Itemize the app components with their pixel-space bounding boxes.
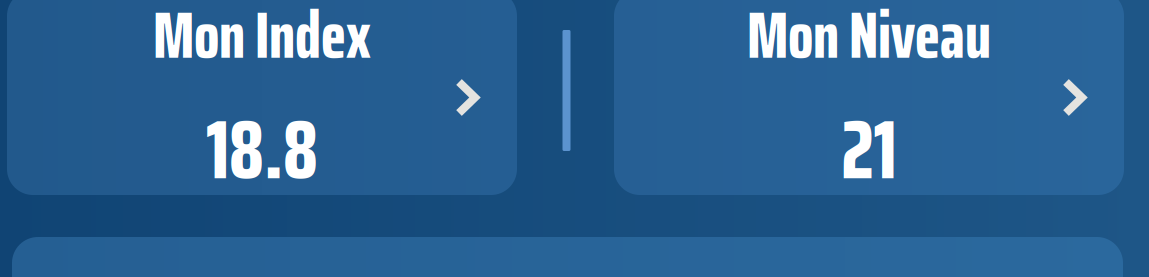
staticText: 18.8 xyxy=(206,84,318,214)
button[interactable]: Mon Index xyxy=(7,0,517,195)
staticText: Mon Niveau xyxy=(747,0,991,86)
staticText: Mon Index xyxy=(153,0,371,86)
staticText: 21 xyxy=(841,84,896,214)
button[interactable]: Mon Niveau xyxy=(614,0,1124,195)
